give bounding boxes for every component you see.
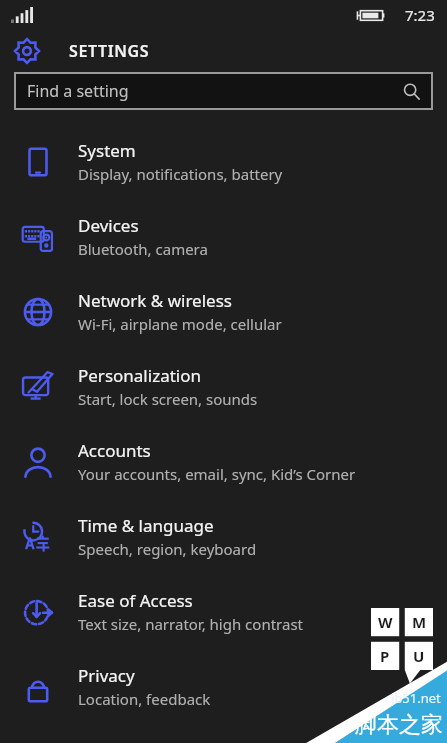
staticText: Accounts [78,439,151,462]
button[interactable]: Privacy [0,649,447,724]
staticText: System [78,139,136,162]
button[interactable]: Find a setting [14,72,433,110]
staticText: 脚本之家 [355,711,443,739]
staticText: Text size, narrator, high contrast [78,614,303,634]
button[interactable]: Network & wireless [0,274,447,349]
staticText: jb51.net [391,689,441,707]
button[interactable]: Devices [0,199,447,274]
staticText: Devices [78,214,139,237]
staticText: Ease of Access [78,589,193,612]
staticText: 7:23 [405,5,435,25]
staticText: U [413,646,425,666]
button[interactable]: Ease of Access [0,574,447,649]
staticText: Speech, region, keyboard [78,539,257,559]
staticText: Privacy [78,664,135,687]
button[interactable]: Personalization [0,349,447,424]
staticText: Display, notifications, battery [78,164,283,184]
staticText: Time & language [78,514,214,537]
staticText: M [412,612,427,632]
staticText: Network & wireless [78,289,232,312]
staticText: P [380,646,390,666]
staticText: Find a setting [27,80,129,102]
button[interactable]: System [0,124,447,199]
staticText: Location, feedback [78,689,211,709]
button[interactable]: Time & language [0,499,447,574]
staticText: Personalization [78,364,201,387]
staticText: Wi-Fi, airplane mode, cellular [78,314,282,334]
staticText: SETTINGS [69,40,150,62]
staticText: Your accounts, email, sync, Kid’s Corner [78,464,356,484]
staticText: Start, lock screen, sounds [78,389,258,409]
button[interactable]: Accounts [0,424,447,499]
staticText: Bluetooth, camera [78,239,208,259]
staticText: W [378,612,393,632]
